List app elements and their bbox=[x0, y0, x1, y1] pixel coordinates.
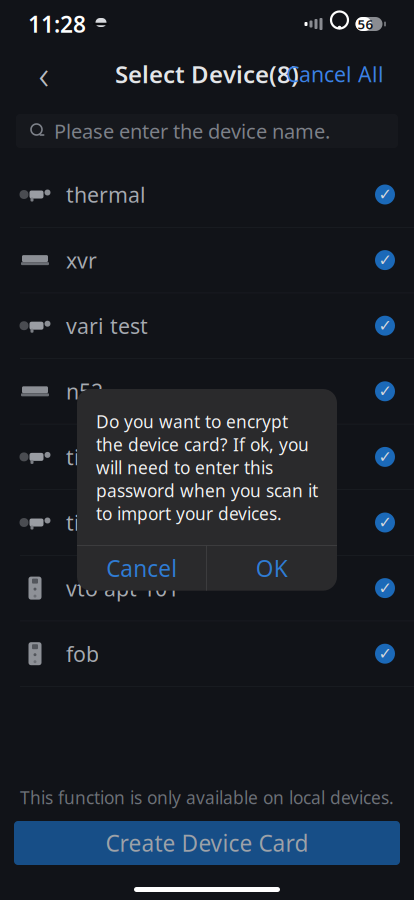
button[interactable]: Cancel bbox=[77, 546, 206, 591]
staticText: Cancel All bbox=[286, 60, 384, 88]
staticText: ✓ bbox=[378, 579, 391, 597]
staticText: 11:28 bbox=[28, 9, 86, 39]
staticText: thermal bbox=[66, 180, 146, 209]
button[interactable]: tic bbox=[0, 490, 414, 556]
button[interactable]: fob bbox=[0, 621, 414, 687]
staticText: vari test bbox=[66, 311, 148, 340]
staticText: Cancel bbox=[106, 553, 177, 583]
button[interactable]: tic bbox=[0, 424, 414, 490]
staticText: Do you want to encrypt the device card? … bbox=[96, 410, 318, 525]
staticText: tic bbox=[66, 508, 90, 537]
staticText: 56 bbox=[357, 15, 373, 33]
staticText: ‹ bbox=[38, 47, 49, 100]
staticText: ✓ bbox=[378, 513, 391, 532]
staticText: n52 bbox=[66, 377, 103, 405]
staticText: OK bbox=[256, 553, 288, 583]
button[interactable]: vari test bbox=[0, 293, 414, 359]
staticText: This function is only available on local… bbox=[20, 786, 394, 809]
button[interactable]: n52 bbox=[0, 359, 414, 424]
staticText: ✓ bbox=[378, 448, 391, 466]
staticText: Select Device(8) bbox=[115, 58, 299, 90]
staticText: ✓ bbox=[378, 317, 391, 335]
staticText: ✓ bbox=[378, 382, 391, 400]
staticText: vto apt 101 bbox=[66, 574, 179, 602]
button[interactable]: xvr bbox=[0, 228, 414, 293]
button[interactable]: Cancel All bbox=[278, 52, 392, 96]
staticText: tic bbox=[66, 443, 90, 471]
staticText: fob bbox=[66, 639, 99, 668]
staticText: Please enter the device name. bbox=[54, 118, 330, 144]
button[interactable]: vto apt 101 bbox=[0, 556, 414, 621]
button[interactable]: OK bbox=[207, 546, 337, 591]
button[interactable]: Back bbox=[22, 52, 66, 96]
button[interactable]: Create Device Card bbox=[0, 821, 414, 865]
staticText: ✓ bbox=[378, 251, 391, 269]
staticText: ✓ bbox=[378, 185, 391, 204]
button[interactable]: thermal bbox=[0, 162, 414, 228]
staticText: ✓ bbox=[378, 645, 391, 663]
staticText: xvr bbox=[66, 246, 97, 274]
staticText: Create Device Card bbox=[105, 828, 308, 858]
